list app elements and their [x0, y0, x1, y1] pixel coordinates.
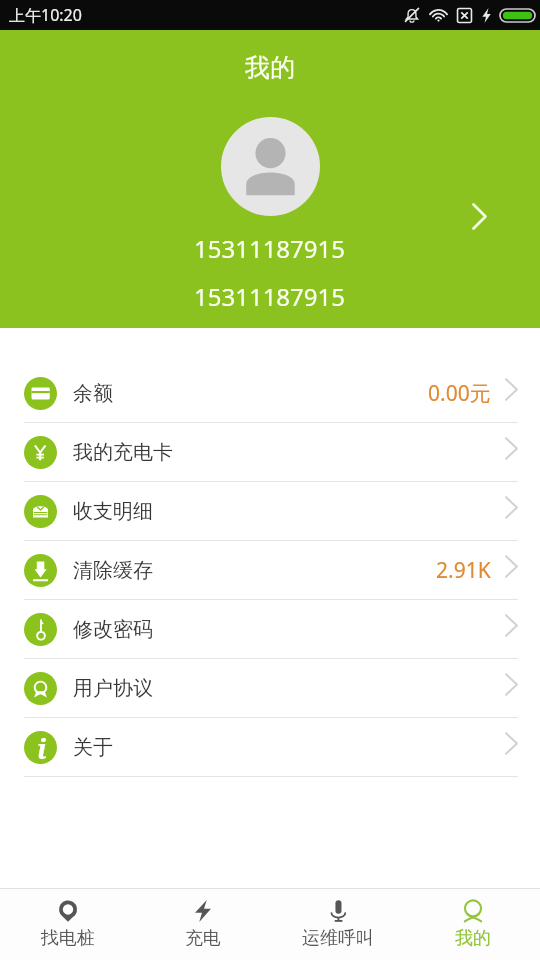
button[interactable]: 清除缓存: [0, 541, 540, 600]
staticText: 收支明细: [73, 499, 153, 524]
staticText: 余额: [73, 381, 113, 406]
button[interactable]: i: [0, 718, 540, 777]
button[interactable]: 收支明细: [0, 482, 540, 541]
staticText: 用户协议: [73, 676, 153, 701]
button[interactable]: 余额: [0, 364, 540, 423]
staticText: 0.00元: [428, 379, 491, 408]
button[interactable]: 修改密码: [0, 600, 540, 659]
staticText: 15311187915: [194, 280, 346, 313]
button[interactable]: Profile details: [459, 196, 499, 236]
button[interactable]: [221, 117, 320, 216]
button[interactable]: 我的: [405, 889, 540, 960]
staticText: 清除缓存: [73, 558, 153, 583]
staticText: 我的: [245, 52, 295, 83]
staticText: i: [37, 731, 47, 763]
staticText: 2.91K: [436, 556, 491, 585]
button[interactable]: 用户协议: [0, 659, 540, 718]
button[interactable]: 找电桩: [0, 889, 135, 960]
staticText: 充电: [185, 927, 221, 950]
button[interactable]: 我的充电卡: [0, 423, 540, 482]
button[interactable]: 运维呼叫: [270, 889, 405, 960]
button[interactable]: 充电: [135, 889, 270, 960]
staticText: 修改密码: [73, 617, 153, 642]
staticText: 我的: [455, 927, 491, 950]
staticText: 上午10:20: [9, 4, 82, 26]
staticText: 15311187915: [194, 232, 346, 265]
staticText: 关于: [73, 735, 113, 760]
staticText: 我的充电卡: [73, 440, 173, 465]
staticText: 运维呼叫: [302, 927, 374, 950]
staticText: 找电桩: [41, 927, 95, 950]
